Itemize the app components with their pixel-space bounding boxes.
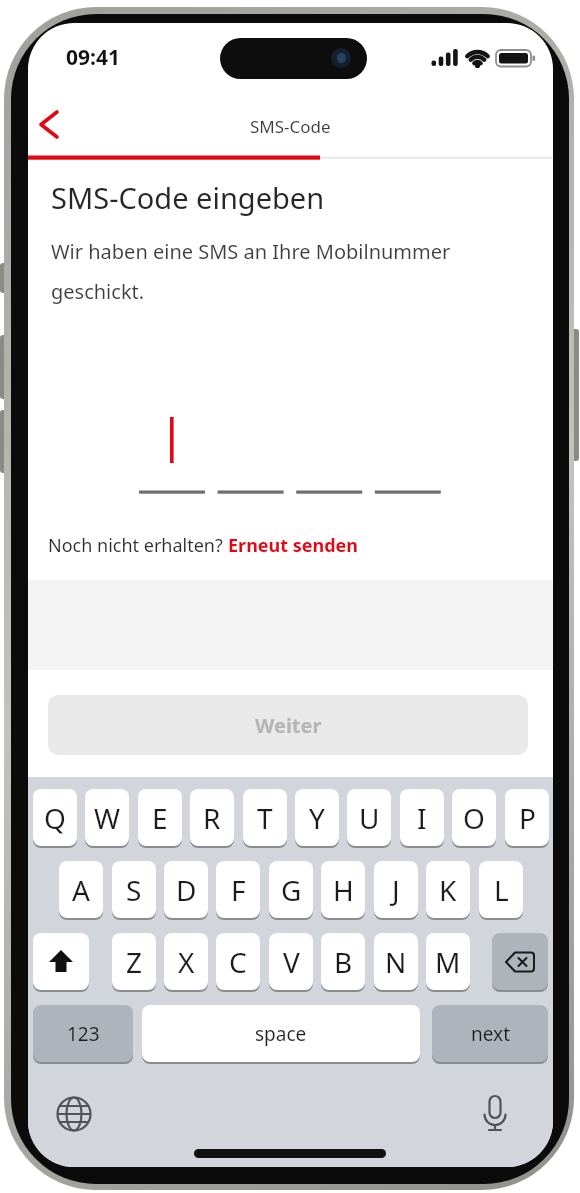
- button[interactable]: V: [269, 933, 313, 990]
- staticText: S: [126, 871, 142, 909]
- staticText: Noch nicht erhalten?: [48, 533, 228, 558]
- button[interactable]: Y: [295, 789, 339, 846]
- button[interactable]: R: [190, 789, 234, 846]
- button[interactable]: U: [347, 789, 391, 846]
- button[interactable]: M: [426, 933, 470, 990]
- button[interactable]: Z: [112, 933, 156, 990]
- button[interactable]: T: [243, 789, 287, 846]
- button[interactable]: S: [112, 861, 156, 918]
- button[interactable]: C: [216, 933, 260, 990]
- button[interactable]: F: [216, 861, 260, 918]
- staticText: V: [283, 943, 300, 981]
- button[interactable]: Q: [33, 789, 77, 846]
- button[interactable]: W: [85, 789, 129, 846]
- button[interactable]: A: [59, 861, 103, 918]
- staticText: U: [359, 799, 380, 837]
- staticText: Weiter: [255, 712, 322, 739]
- staticText: next: [471, 1021, 510, 1047]
- button[interactable]: D: [164, 861, 208, 918]
- staticText: W: [94, 799, 121, 837]
- staticText: N: [385, 943, 407, 981]
- staticText: C: [229, 943, 247, 981]
- staticText: M: [435, 943, 461, 981]
- staticText: P: [519, 799, 536, 837]
- staticText: Y: [309, 799, 325, 837]
- button[interactable]: G: [269, 861, 313, 918]
- staticText: J: [392, 871, 400, 909]
- button[interactable]: J: [374, 861, 418, 918]
- button[interactable]: E: [138, 789, 182, 846]
- button[interactable]: SMS-Code: [250, 115, 331, 138]
- staticText: Wir haben eine SMS an Ihre Mobilnummer g…: [51, 238, 451, 305]
- staticText: 09:41: [66, 43, 120, 72]
- staticText: K: [439, 871, 457, 909]
- staticText: E: [152, 799, 168, 837]
- button[interactable]: [33, 933, 89, 990]
- staticText: Z: [126, 943, 143, 981]
- button[interactable]: P: [505, 789, 549, 846]
- staticText: I: [417, 799, 427, 837]
- button[interactable]: next: [432, 1005, 548, 1062]
- staticText: B: [334, 943, 353, 981]
- button[interactable]: 123: [33, 1005, 133, 1062]
- staticText: SMS-Code eingeben: [51, 178, 325, 217]
- staticText: 123: [67, 1021, 100, 1047]
- button[interactable]: H: [321, 861, 365, 918]
- staticText: Q: [44, 799, 66, 837]
- staticText: space: [255, 1021, 307, 1047]
- button[interactable]: N: [374, 933, 418, 990]
- staticText: L: [494, 871, 509, 909]
- button[interactable]: Weiter: [48, 695, 528, 755]
- staticText: H: [333, 871, 354, 909]
- button[interactable]: [492, 933, 548, 990]
- staticText: F: [231, 871, 246, 909]
- staticText: T: [257, 799, 273, 837]
- button[interactable]: B: [321, 933, 365, 990]
- button[interactable]: K: [426, 861, 470, 918]
- button[interactable]: I: [400, 789, 444, 846]
- staticText: A: [72, 871, 90, 909]
- staticText: R: [203, 799, 221, 837]
- button[interactable]: O: [452, 789, 496, 846]
- staticText: X: [178, 943, 195, 981]
- staticText: D: [176, 871, 197, 909]
- button[interactable]: L: [479, 861, 523, 918]
- button[interactable]: Erneut senden: [228, 533, 359, 558]
- button[interactable]: X: [164, 933, 208, 990]
- staticText: O: [463, 799, 485, 837]
- button[interactable]: space: [142, 1005, 420, 1062]
- staticText: G: [281, 871, 302, 909]
